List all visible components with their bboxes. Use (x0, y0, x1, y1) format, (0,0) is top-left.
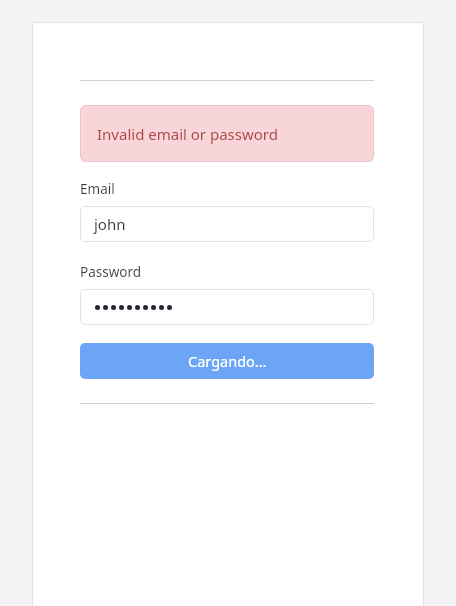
staticText: john (94, 214, 126, 234)
button[interactable]: Cargando... (80, 343, 374, 379)
button[interactable]: john (80, 206, 374, 242)
button[interactable] (80, 289, 374, 325)
staticText: Password (80, 263, 142, 281)
staticText: Email (80, 180, 115, 198)
staticText: Cargando... (188, 351, 267, 371)
staticText: Invalid email or password (97, 124, 278, 144)
